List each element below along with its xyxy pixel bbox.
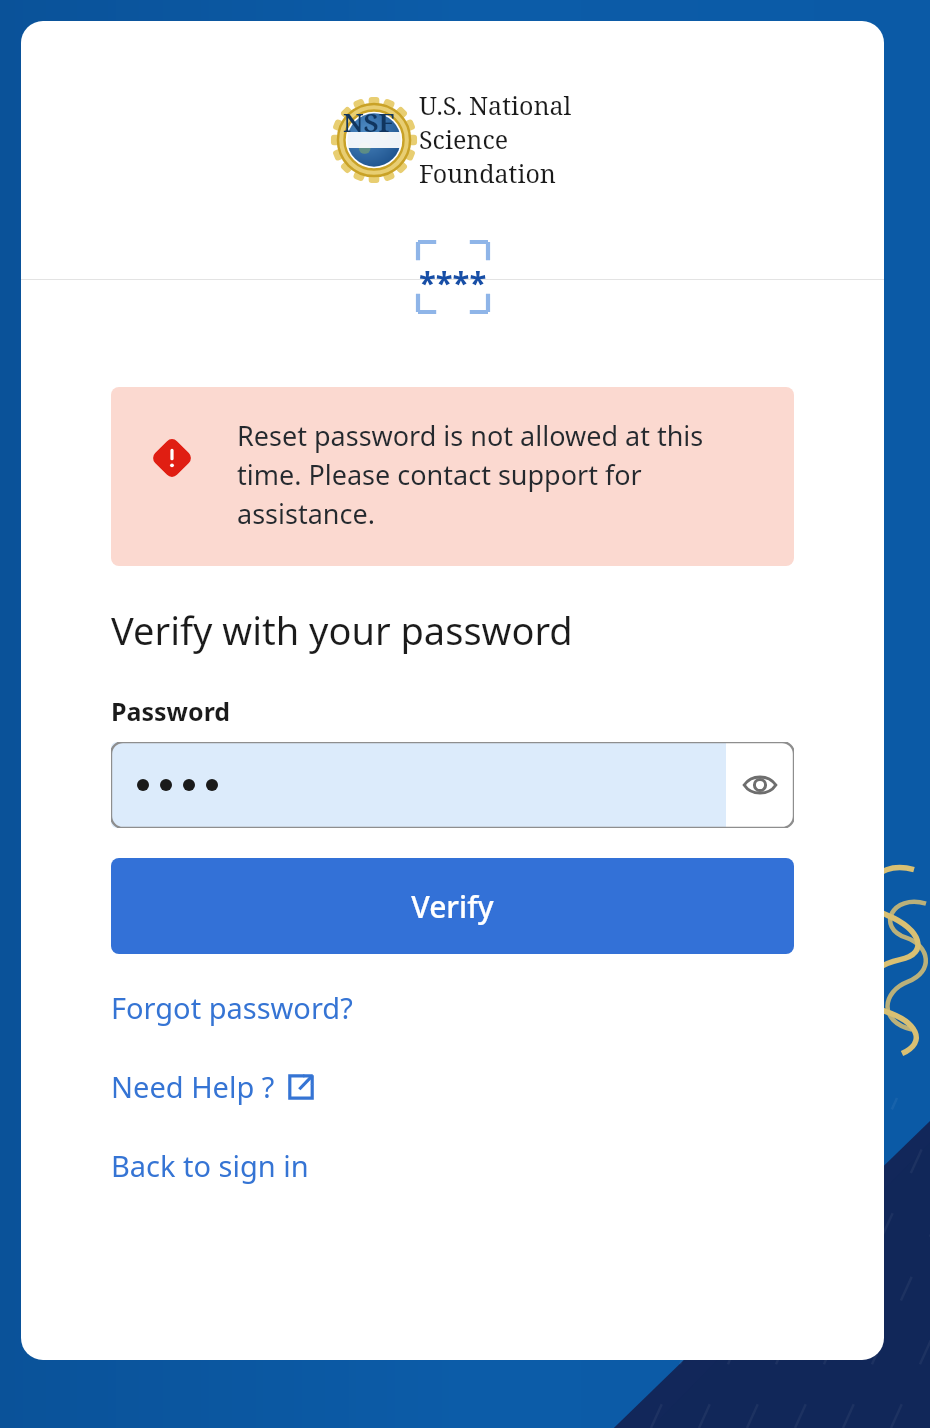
button[interactable]: Verify [111, 858, 794, 954]
staticText: **** [419, 261, 487, 303]
staticText: Verify with your password [111, 604, 573, 656]
button[interactable]: Show password [726, 742, 794, 828]
button[interactable]: Need Help ? [111, 1061, 315, 1112]
staticText: U.S. National [419, 88, 572, 122]
staticText: Science [419, 122, 509, 156]
staticText: Need Help ? [111, 1067, 275, 1106]
staticText: Forgot password? [111, 988, 353, 1027]
staticText: Verify [411, 886, 494, 927]
staticText: Reset password is not allowed at this ti… [237, 417, 770, 532]
staticText: Password [111, 694, 231, 728]
button[interactable]: Back to sign in [111, 1140, 309, 1191]
button[interactable]: Forgot password? [111, 982, 353, 1033]
button[interactable]: Show password [111, 742, 794, 828]
staticText: NSF [343, 104, 395, 139]
staticText: Foundation [419, 156, 556, 190]
staticText: Back to sign in [111, 1146, 309, 1185]
